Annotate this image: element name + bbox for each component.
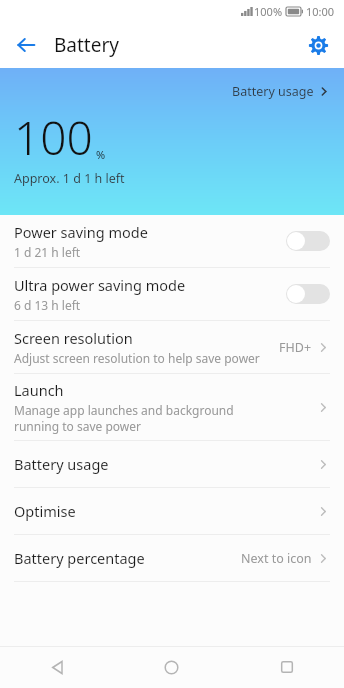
button[interactable]: Back bbox=[6, 25, 46, 65]
button[interactable]: Battery percentage bbox=[0, 535, 344, 581]
button[interactable]: Battery usage bbox=[0, 441, 344, 487]
button[interactable]: Home bbox=[114, 646, 229, 688]
staticText: Battery usage bbox=[232, 83, 314, 100]
staticText: 1 d 21 h left bbox=[14, 244, 280, 260]
staticText: Battery usage bbox=[14, 454, 109, 474]
button[interactable]: Optimise bbox=[0, 488, 344, 534]
staticText: Manage app launches and background runni… bbox=[14, 402, 281, 434]
button[interactable]: Ultra power saving mode bbox=[0, 268, 344, 320]
staticText: Adjust screen resolution to help save po… bbox=[14, 350, 273, 366]
button[interactable]: Power saving mode bbox=[0, 215, 344, 267]
staticText: Power saving mode bbox=[14, 222, 148, 242]
button[interactable]: Launch bbox=[0, 374, 344, 440]
staticText: Approx. 1 d 1 h left bbox=[14, 170, 125, 187]
button[interactable]: Toggle bbox=[286, 283, 330, 305]
button[interactable]: Battery usage bbox=[228, 80, 334, 103]
staticText: Optimise bbox=[14, 501, 76, 521]
staticText: Ultra power saving mode bbox=[14, 275, 186, 295]
staticText: FHD+ bbox=[279, 339, 312, 356]
staticText: Next to icon bbox=[241, 550, 312, 567]
staticText: 100% bbox=[254, 4, 283, 19]
staticText: Battery percentage bbox=[14, 548, 145, 568]
button[interactable]: Back bbox=[0, 646, 114, 688]
button[interactable]: Recents bbox=[229, 646, 344, 688]
staticText: 6 d 13 h left bbox=[14, 297, 280, 313]
button[interactable]: Toggle bbox=[286, 230, 330, 252]
button[interactable]: Screen resolution bbox=[0, 321, 344, 373]
staticText: Battery bbox=[54, 32, 119, 58]
staticText: Launch bbox=[14, 380, 64, 400]
staticText: % bbox=[96, 147, 106, 162]
staticText: 10:00 bbox=[306, 4, 335, 19]
button[interactable]: Settings bbox=[298, 25, 338, 65]
staticText: 100 bbox=[14, 106, 93, 169]
staticText: Screen resolution bbox=[14, 328, 133, 348]
